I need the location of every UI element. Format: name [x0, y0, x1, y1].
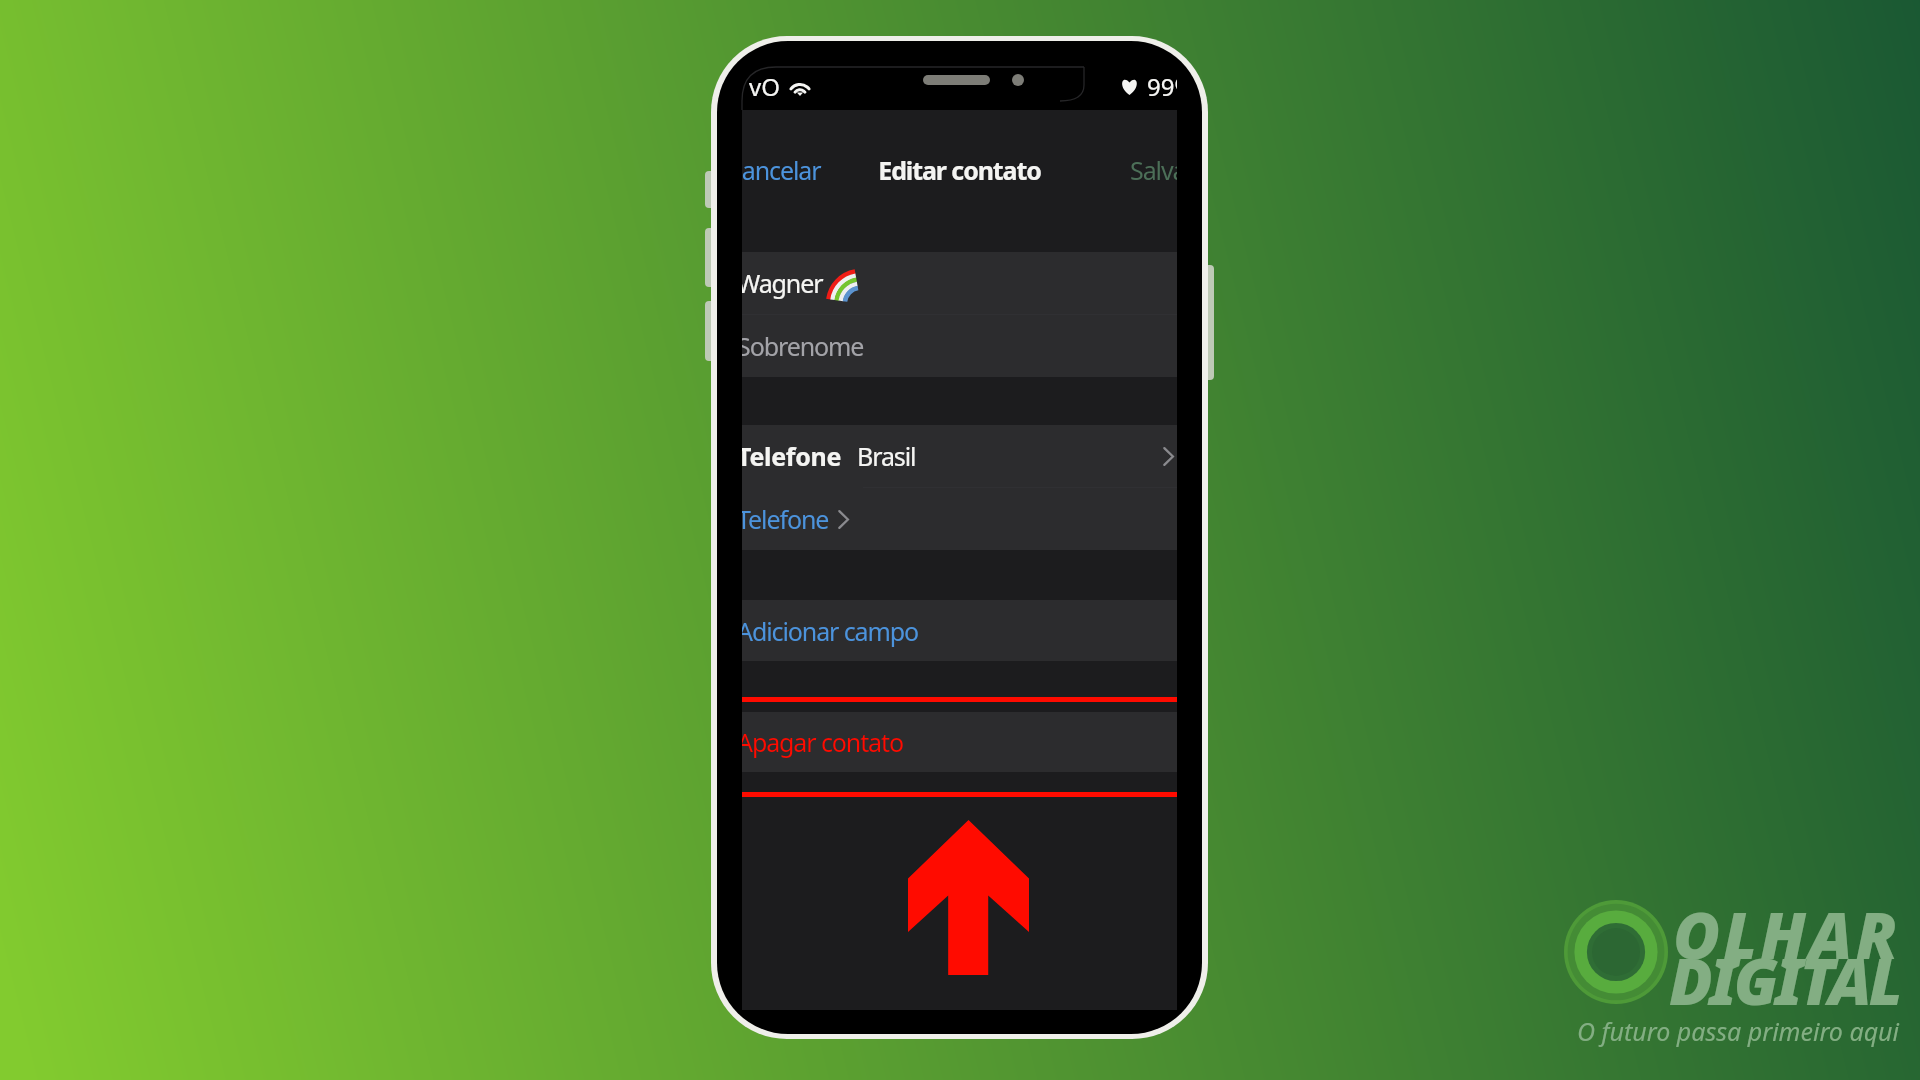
staticText: OLHAR: [1673, 891, 1901, 978]
staticText: Brasil: [857, 439, 916, 473]
staticText: Adicionar campo: [742, 614, 919, 648]
staticText: Telefone: [742, 502, 829, 536]
staticText: Telefone: [742, 439, 842, 473]
button[interactable]: Wagner: [742, 252, 1177, 314]
button[interactable]: Cancelar: [742, 142, 821, 198]
staticText: Wagner: [742, 266, 823, 300]
staticText: 99%: [1147, 70, 1177, 103]
staticText: Sobrenome: [742, 329, 864, 363]
button[interactable]: Salvar: [1130, 142, 1177, 198]
staticText: O futuro passa primeiro aqui: [1577, 1014, 1900, 1048]
button[interactable]: Apagar contato: [742, 712, 1177, 772]
button[interactable]: Sobrenome: [742, 315, 1177, 377]
staticText: DIGITAL: [1669, 937, 1900, 1024]
button[interactable]: Adicionar campo: [742, 600, 1177, 661]
staticText: Salvar: [1130, 153, 1177, 187]
button[interactable]: Telefone: [742, 488, 1177, 550]
staticText: Apagar contato: [742, 725, 903, 759]
button[interactable]: Telefone: [742, 425, 1177, 487]
other: Scroll up: [908, 820, 1029, 975]
staticText: Cancelar: [742, 153, 821, 187]
staticText: Editar contato: [742, 153, 1177, 187]
staticText: vO: [749, 70, 780, 103]
